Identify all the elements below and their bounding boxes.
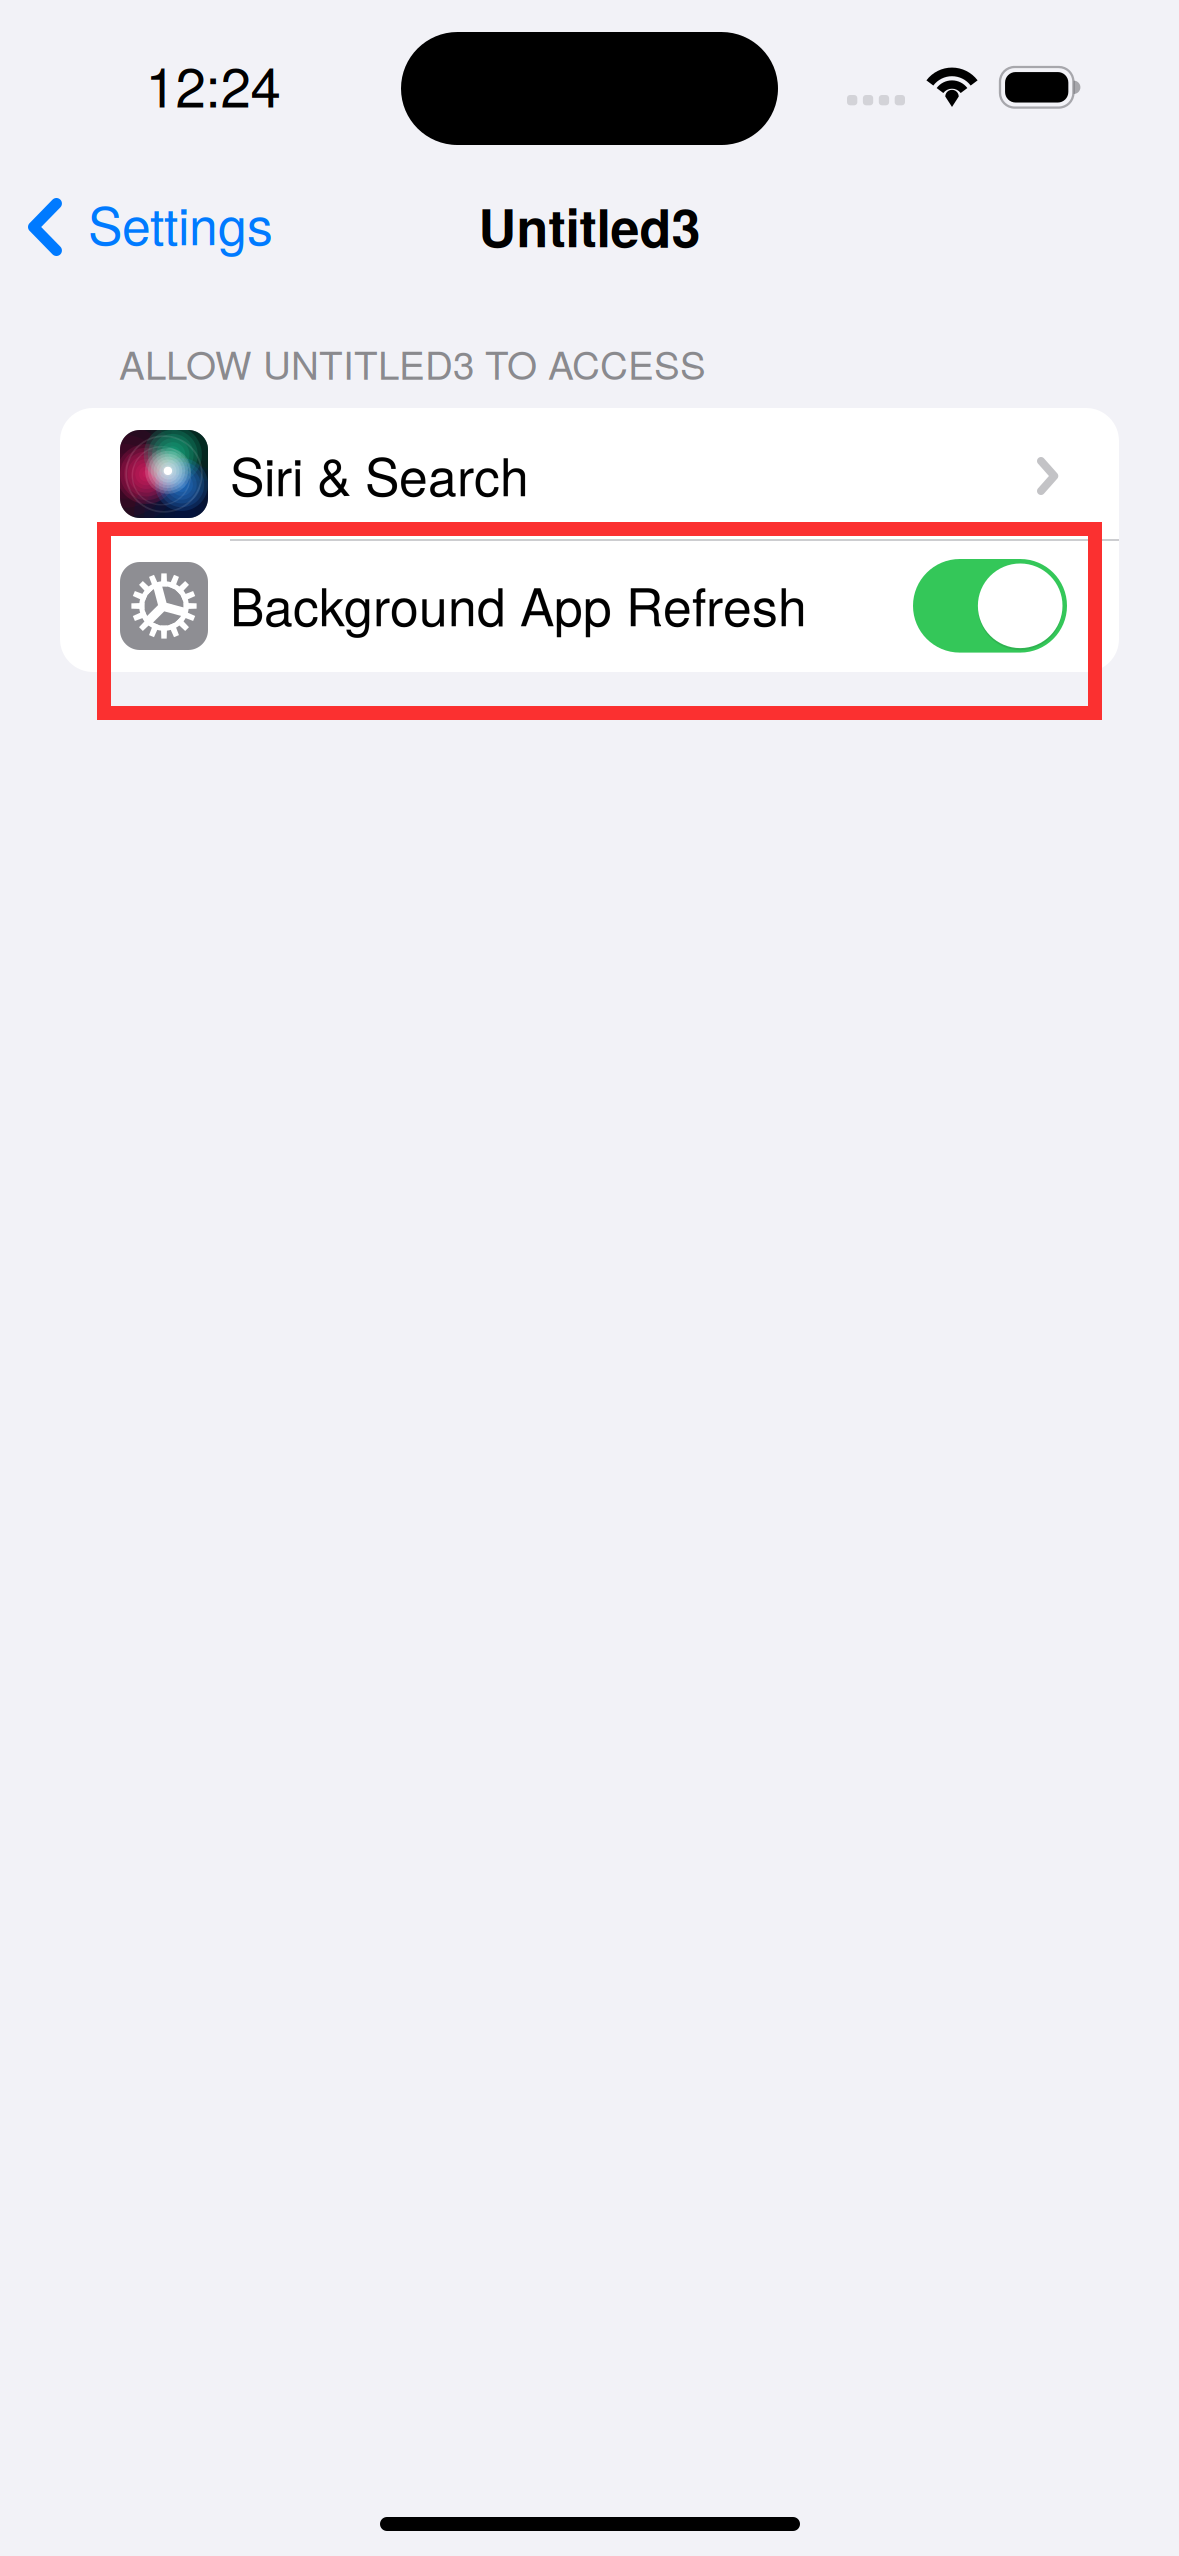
- staticText: Untitled3: [478, 189, 700, 263]
- button[interactable]: Back to Settings: [0, 163, 320, 283]
- staticText: Background App Refresh: [230, 567, 807, 641]
- button[interactable]: Background App Refresh: [913, 559, 1067, 653]
- staticText: Settings: [88, 186, 273, 260]
- staticText: 12:24: [145, 45, 280, 123]
- staticText: ALLOW UNTITLED3 TO ACCESS: [119, 335, 706, 391]
- staticText: Siri & Search: [230, 437, 529, 511]
- button[interactable]: Siri & Search: [60, 408, 1119, 540]
- button[interactable]: Background App Refresh: [60, 540, 1119, 672]
